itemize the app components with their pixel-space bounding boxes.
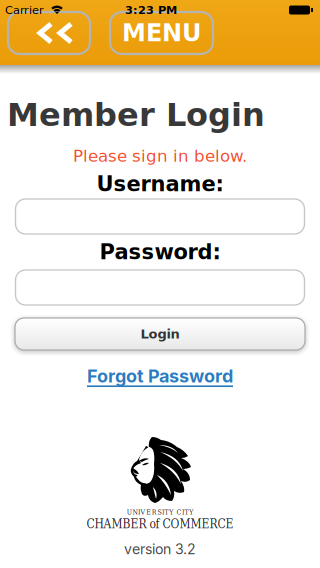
staticText: Member Login xyxy=(7,96,265,134)
staticText: version 3.2 xyxy=(124,540,196,557)
button[interactable]: Username xyxy=(15,199,304,234)
staticText: Login xyxy=(140,326,179,342)
staticText: MENU xyxy=(122,19,201,47)
button[interactable]: Forgot Password xyxy=(87,364,233,388)
button[interactable]: Back xyxy=(8,12,90,54)
staticText: Password: xyxy=(99,240,220,264)
staticText: 3:23 PM xyxy=(125,3,177,17)
staticText: UNIVERSITY CITY xyxy=(127,508,193,516)
button[interactable]: MENU xyxy=(110,12,213,54)
staticText: Forgot Password xyxy=(87,365,233,387)
staticText: CHAMBER of COMMERCE xyxy=(86,517,233,531)
staticText: Please sign in below. xyxy=(73,146,247,166)
button[interactable]: Login xyxy=(15,318,305,350)
button[interactable]: Password xyxy=(15,270,304,305)
staticText: Username: xyxy=(96,172,223,196)
staticText: Carrier xyxy=(5,3,44,17)
